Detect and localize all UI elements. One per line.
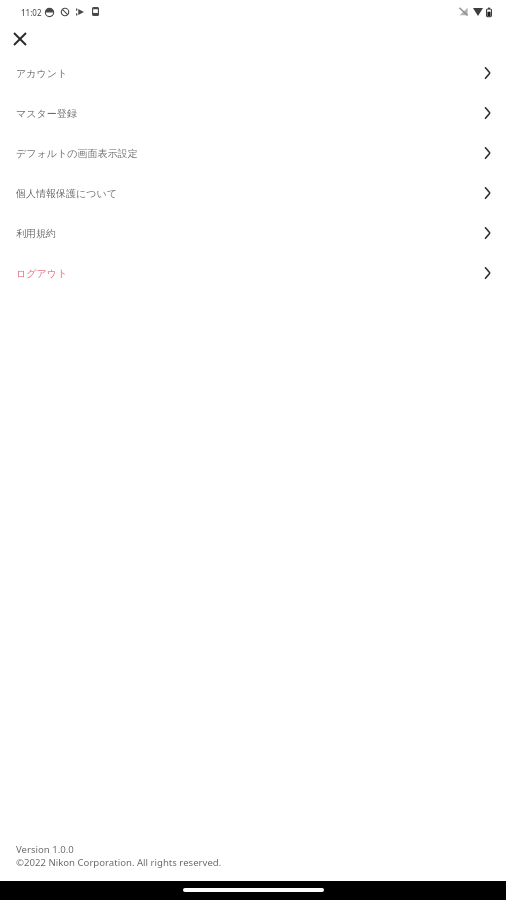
staticText: ©2022 Nikon Corporation. All rights rese… (16, 856, 222, 869)
staticText: 利用規約 (16, 227, 56, 240)
button[interactable]: 個人情報保護について (0, 173, 506, 213)
staticText: アカウント (16, 67, 68, 80)
staticText: ログアウト (16, 267, 68, 280)
staticText: デフォルトの画面表示設定 (16, 147, 138, 160)
button[interactable]: デフォルトの画面表示設定 (0, 133, 506, 173)
staticText: 11:02 (21, 7, 42, 18)
staticText: Version 1.0.0 (16, 843, 74, 856)
staticText: マスター登録 (16, 107, 77, 120)
button[interactable]: ログアウト (0, 253, 506, 293)
button[interactable]: 利用規約 (0, 213, 506, 253)
button[interactable]: Close (0, 26, 40, 53)
staticText: 個人情報保護について (16, 187, 117, 200)
button[interactable]: マスター登録 (0, 93, 506, 133)
button[interactable]: アカウント (0, 53, 506, 93)
